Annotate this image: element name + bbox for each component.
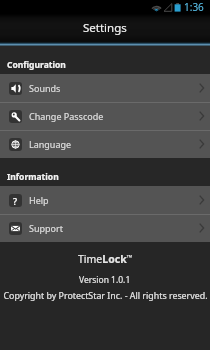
staticText: 1:36 [184,0,204,14]
staticText: Information [7,171,59,183]
staticText: Settings [83,20,127,36]
button[interactable]: Language [0,130,210,158]
staticText: Version 1.0.1 [79,274,131,286]
button[interactable]: Change Passcode [0,102,210,130]
button[interactable]: Support [0,214,210,242]
button[interactable]: Sounds [0,74,210,102]
staticText: ? [13,195,18,207]
staticText: Sounds [29,82,61,94]
staticText: Configuration [7,59,66,71]
staticText: Help [29,194,49,206]
staticText: Support [29,222,63,234]
staticText: Copyright by ProtectStar Inc. - All righ… [3,290,208,302]
staticText: Language [29,138,72,150]
button[interactable]: ? [0,186,210,214]
staticText: Change Passcode [29,110,104,122]
staticText: TimeLock™ [78,252,133,266]
